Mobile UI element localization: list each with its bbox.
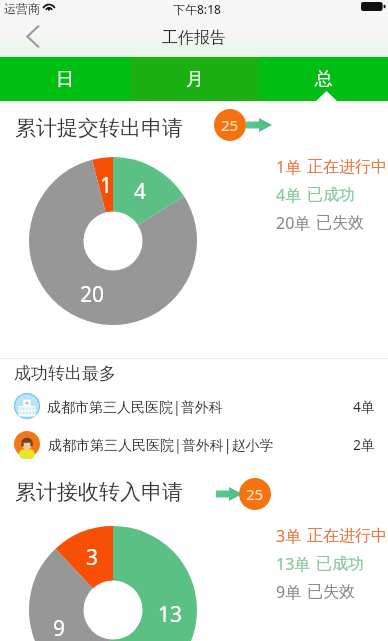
staticText: 月 (186, 68, 204, 91)
staticText: 1 (100, 171, 113, 200)
button[interactable]: 成都市第三人民医院|普外科|赵小学 (14, 431, 376, 457)
staticText: 4 (134, 177, 147, 206)
staticText: 3 (86, 543, 99, 572)
staticText: 日 (56, 68, 74, 91)
button[interactable]: 日 (0, 57, 130, 101)
staticText: 成都市第三人民医院|普外科 (47, 397, 223, 416)
staticText: 4单 (353, 397, 376, 416)
staticText: 累计提交转出申请 (15, 115, 183, 141)
button[interactable]: Back (18, 23, 46, 49)
staticText: 正在进行中 (307, 526, 387, 546)
staticText: 13单 (276, 553, 311, 575)
staticText: 运营商 (4, 1, 40, 16)
staticText: 成功转出最多 (14, 363, 116, 384)
staticText: 1单 (276, 156, 302, 178)
staticText: 下午8:18 (173, 1, 221, 17)
staticText: 20单 (276, 212, 311, 234)
staticText: 9单 (276, 581, 302, 603)
staticText: 工作报告 (162, 28, 226, 48)
staticText: 已失效 (307, 582, 355, 602)
staticText: 9 (53, 614, 66, 641)
button[interactable]: 月 (130, 57, 259, 101)
staticText: 25 (246, 484, 264, 504)
button[interactable]: 25 (214, 109, 246, 141)
staticText: 25 (221, 115, 239, 135)
staticText: 20 (80, 280, 105, 309)
staticText: 4单 (276, 184, 302, 206)
staticText: 已成功 (316, 554, 364, 574)
staticText: 13 (158, 600, 183, 629)
staticText: 3单 (276, 525, 302, 547)
staticText: 累计接收转入申请 (15, 479, 183, 505)
staticText: 总 (315, 68, 333, 91)
other: Transfer direction (216, 487, 242, 501)
button[interactable]: 25 (239, 478, 271, 510)
staticText: 正在进行中 (307, 157, 387, 177)
staticText: 已失效 (316, 213, 364, 233)
other: Transfer direction (246, 118, 272, 132)
staticText: 已成功 (307, 185, 355, 205)
staticText: 2单 (353, 435, 376, 454)
button[interactable]: 成都市第三人民医院|普外科 (14, 393, 376, 419)
staticText: 成都市第三人民医院|普外科|赵小学 (48, 435, 274, 454)
button[interactable]: 总 (259, 57, 388, 101)
